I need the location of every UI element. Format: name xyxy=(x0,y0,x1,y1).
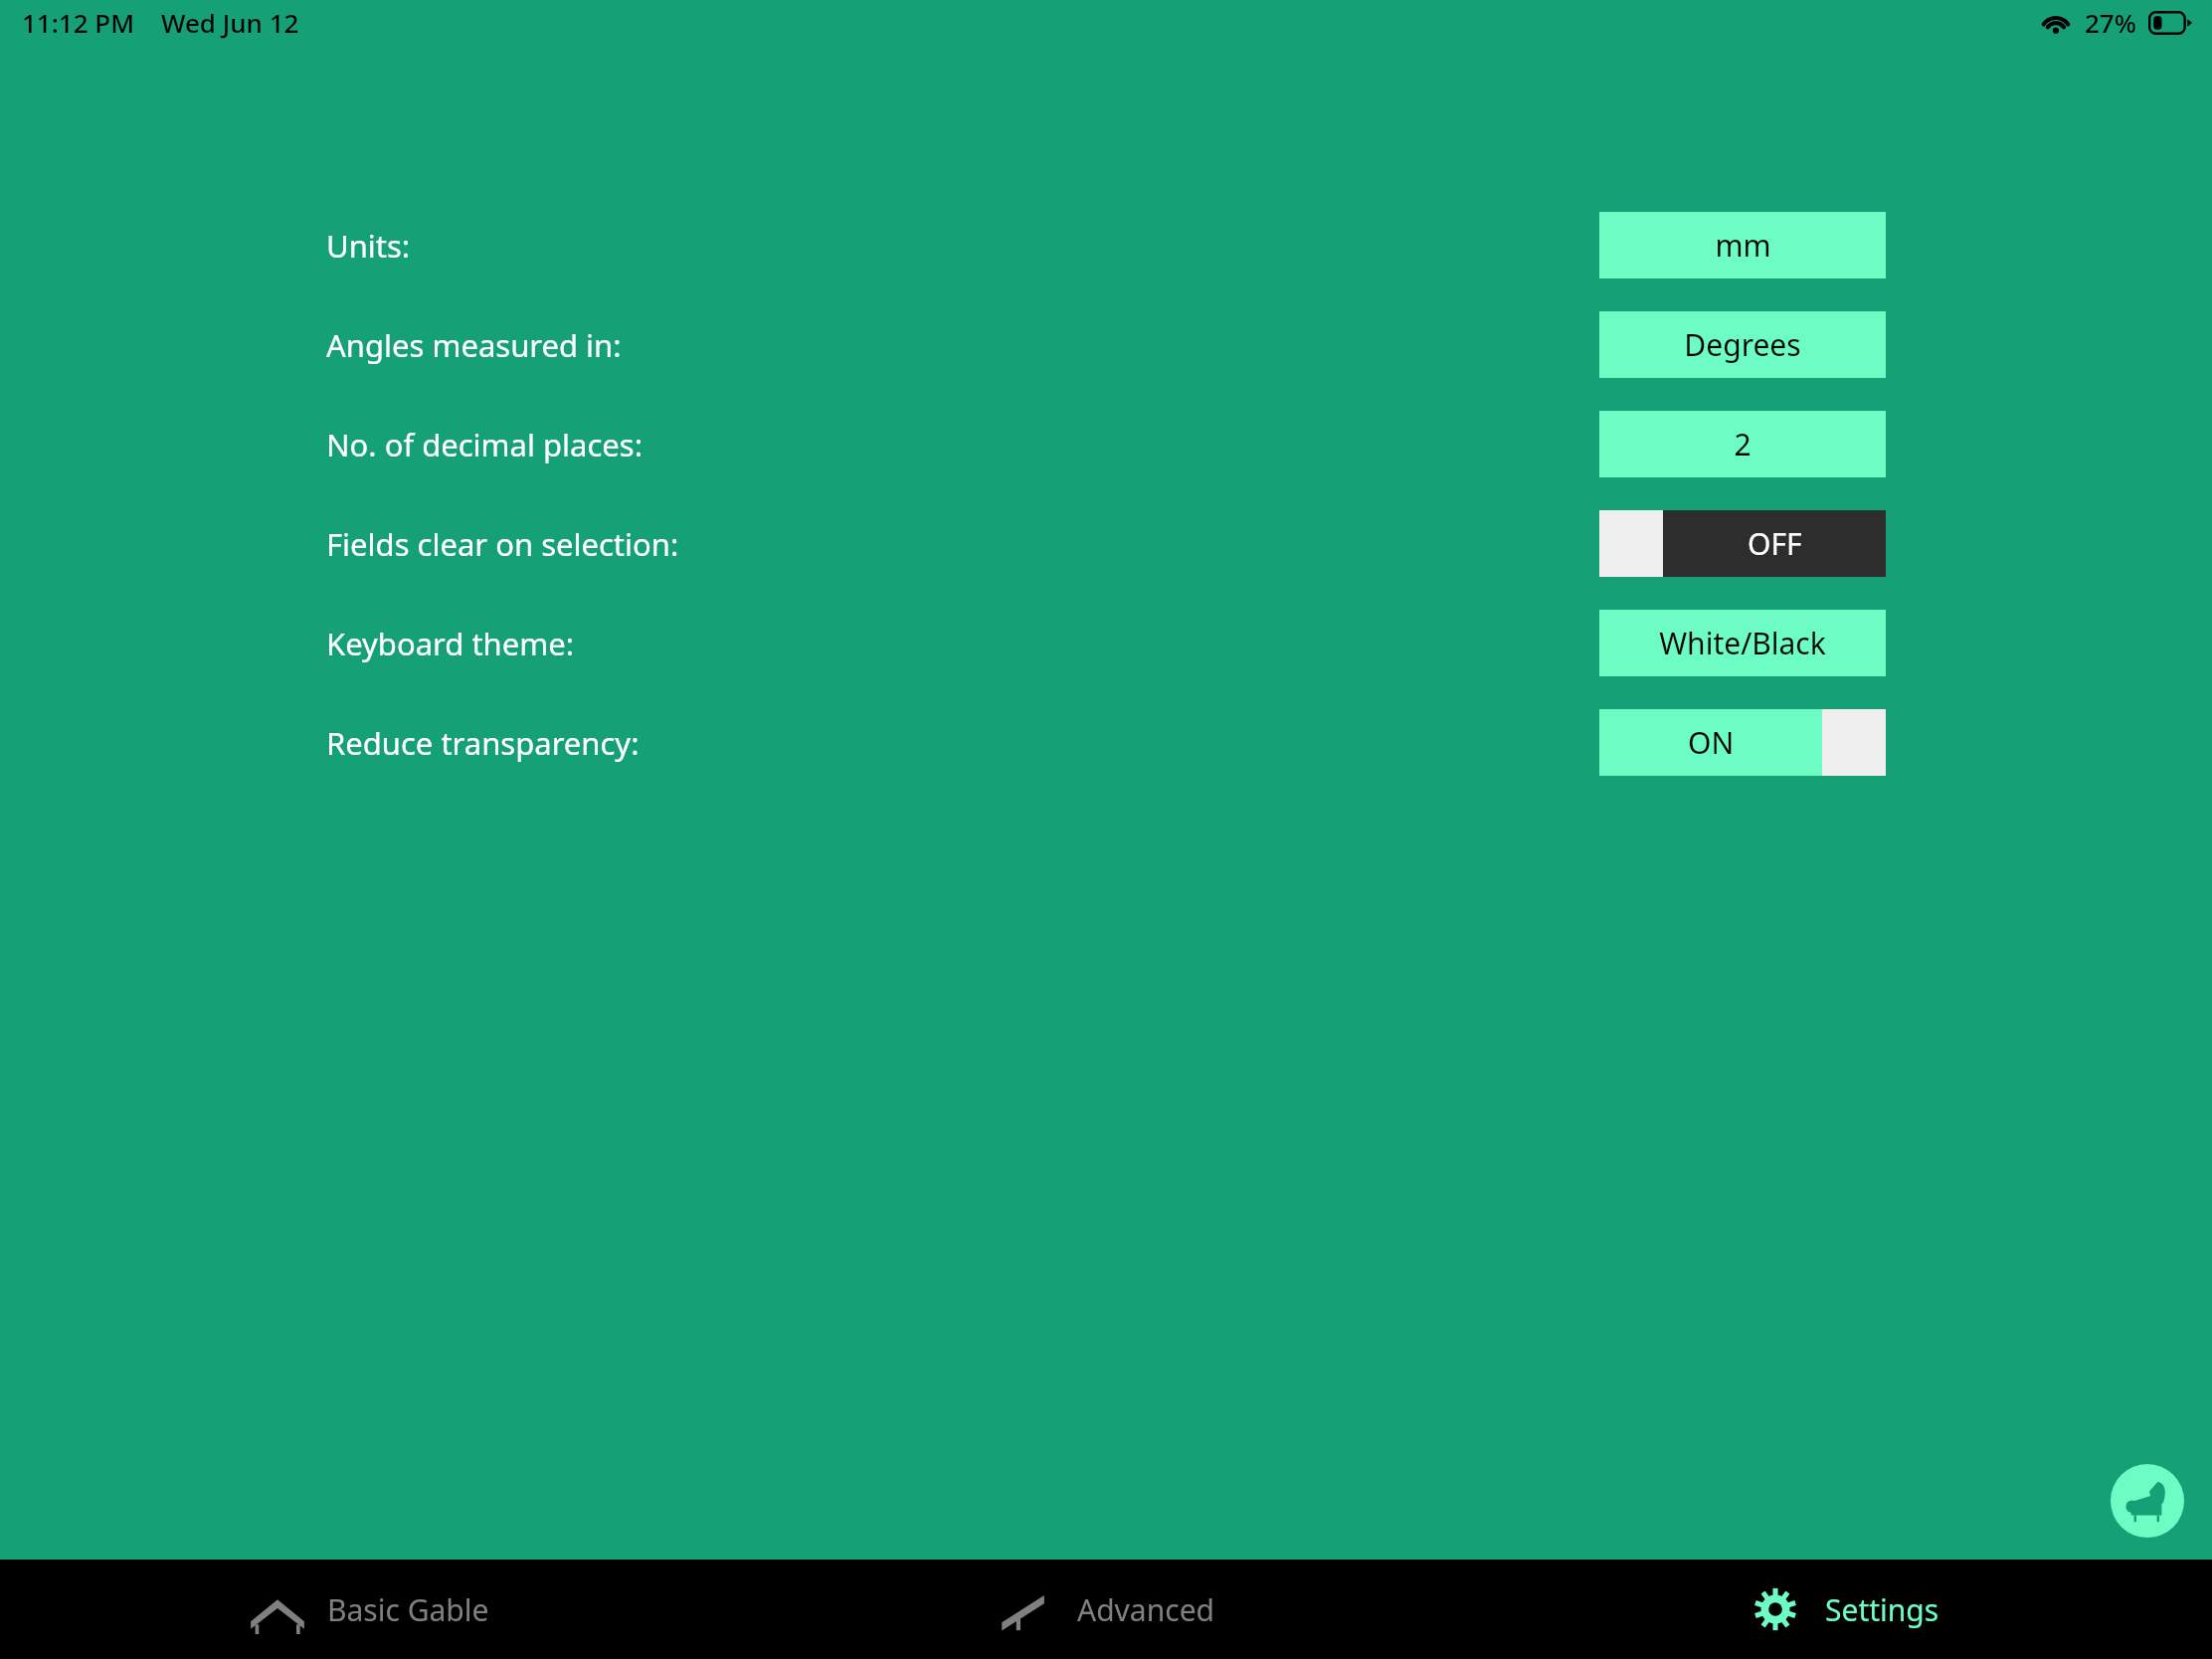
button[interactable]: Basic Gable xyxy=(0,1560,738,1659)
staticText: White/Black xyxy=(1659,623,1826,663)
staticText: 2 xyxy=(1734,424,1751,464)
button[interactable]: Switch off xyxy=(1599,510,1886,577)
button[interactable]: Seating / chair tool xyxy=(2111,1464,2184,1538)
staticText: Keyboard theme: xyxy=(326,623,574,664)
staticText: Advanced xyxy=(1077,1589,1214,1630)
button[interactable]: Advanced xyxy=(738,1560,1475,1659)
button[interactable]: Degrees xyxy=(1599,311,1886,378)
other: Basic Gable xyxy=(250,1587,305,1631)
staticText: Settings xyxy=(1825,1589,1939,1630)
staticText: Degrees xyxy=(1684,324,1801,365)
other: Advanced xyxy=(1000,1587,1055,1631)
staticText: Fields clear on selection: xyxy=(326,523,679,565)
staticText: OFF xyxy=(1748,523,1802,564)
button[interactable]: Settings xyxy=(1475,1560,2212,1659)
staticText: Units: xyxy=(326,225,411,267)
staticText: Basic Gable xyxy=(327,1589,489,1630)
staticText: Angles measured in: xyxy=(326,324,622,366)
staticText: 27% xyxy=(2085,5,2136,40)
button[interactable]: 2 xyxy=(1599,411,1886,477)
other: Settings xyxy=(1748,1587,1803,1631)
staticText: mm xyxy=(1715,225,1771,266)
staticText: No. of decimal places: xyxy=(326,424,643,465)
button[interactable]: Switch on xyxy=(1599,709,1886,776)
staticText: Reduce transparency: xyxy=(326,722,640,764)
button[interactable]: White/Black xyxy=(1599,610,1886,676)
staticText: ON xyxy=(1688,722,1735,763)
staticText: Wed Jun 12 xyxy=(161,5,299,40)
staticText: 11:12 PM xyxy=(22,5,135,40)
button[interactable]: mm xyxy=(1599,212,1886,278)
